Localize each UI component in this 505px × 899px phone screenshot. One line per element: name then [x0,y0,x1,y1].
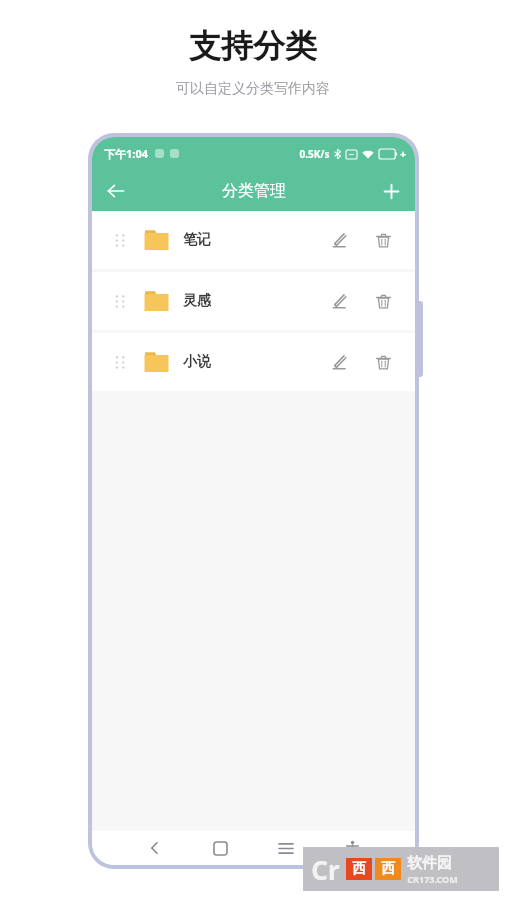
staticText: 0.5K/s [299,147,330,161]
staticText: 软件园 [407,854,452,873]
button[interactable]: Edit 笔记 [319,220,359,260]
staticText: 小说 [183,353,211,371]
staticText: 可以自定义分类写作内容 [176,80,330,98]
button[interactable]: Recents [253,831,319,865]
staticText: + [400,147,406,161]
button[interactable]: Reorder [108,228,132,252]
button[interactable]: Back [122,831,187,865]
button[interactable]: Delete 笔记 [363,220,403,260]
button[interactable]: Reorder [108,289,132,313]
button[interactable]: Reorder [108,350,132,374]
button[interactable]: Edit 小说 [319,342,359,382]
button[interactable]: Accessibility [319,831,385,865]
staticText: 笔记 [183,231,211,249]
button[interactable]: Delete 小说 [363,342,403,382]
button[interactable]: Add category [371,171,411,211]
staticText: CR173.COM [407,873,458,885]
button[interactable]: Home [187,831,253,865]
staticText: 西 [352,860,366,878]
button[interactable]: Delete 灵感 [363,281,403,321]
button[interactable]: Edit 灵感 [319,281,359,321]
button[interactable]: Reorder [92,333,415,391]
button[interactable]: Back [96,171,136,211]
button[interactable]: Reorder [92,272,415,330]
staticText: 下午1:04 [104,146,148,161]
staticText: Cr [311,852,340,887]
button[interactable]: Reorder [92,211,415,269]
staticText: 灵感 [183,292,211,310]
staticText: 支持分类 [189,26,317,66]
staticText: 西 [381,860,395,878]
staticText: 分类管理 [222,181,286,201]
